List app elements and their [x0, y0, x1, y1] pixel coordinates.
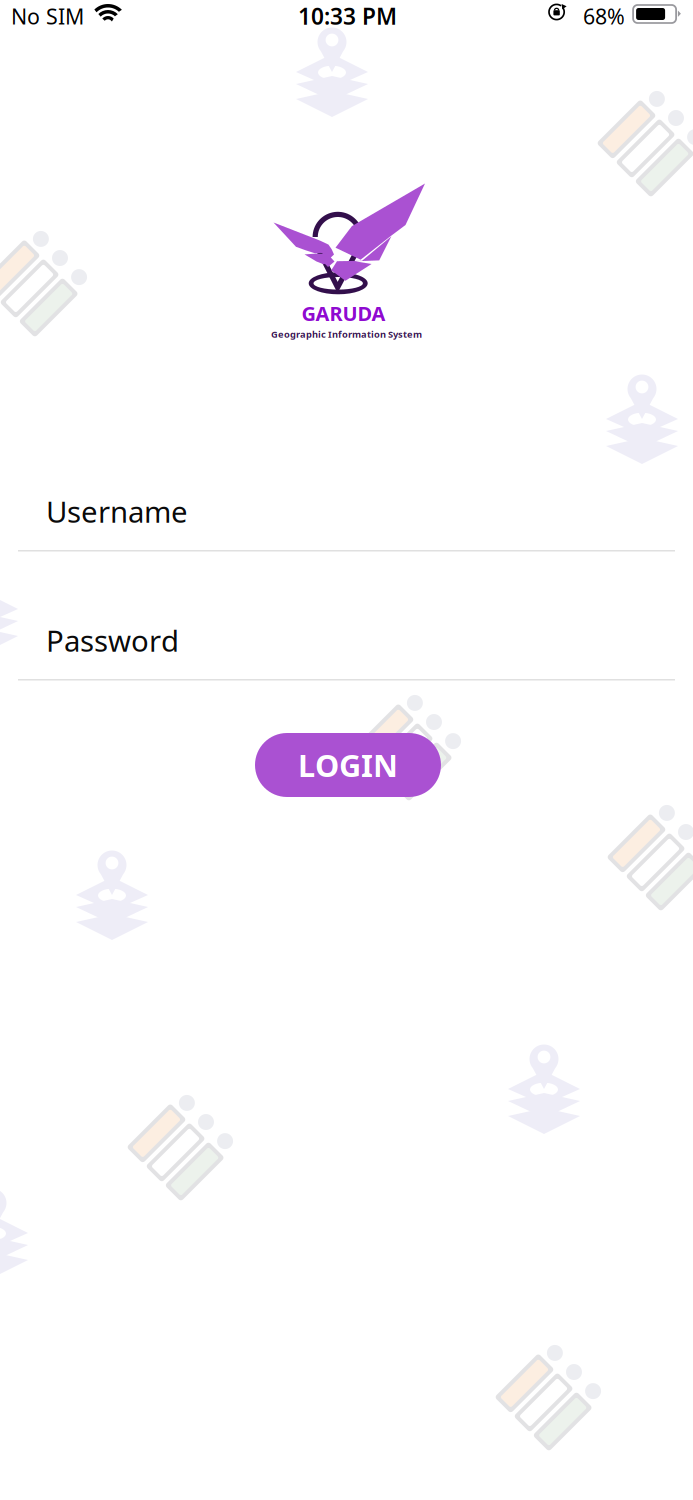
staticText: No SIM [11, 2, 84, 30]
staticText: LOGIN [298, 745, 398, 785]
staticText: Username [46, 492, 188, 531]
staticText: Geographic Information System [271, 328, 422, 340]
staticText: 10:33 PM [298, 1, 397, 31]
staticText: 68% [583, 2, 625, 30]
staticText: GARUDA [301, 300, 385, 327]
button[interactable]: LOGIN [255, 733, 441, 797]
staticText: Password [46, 621, 179, 660]
